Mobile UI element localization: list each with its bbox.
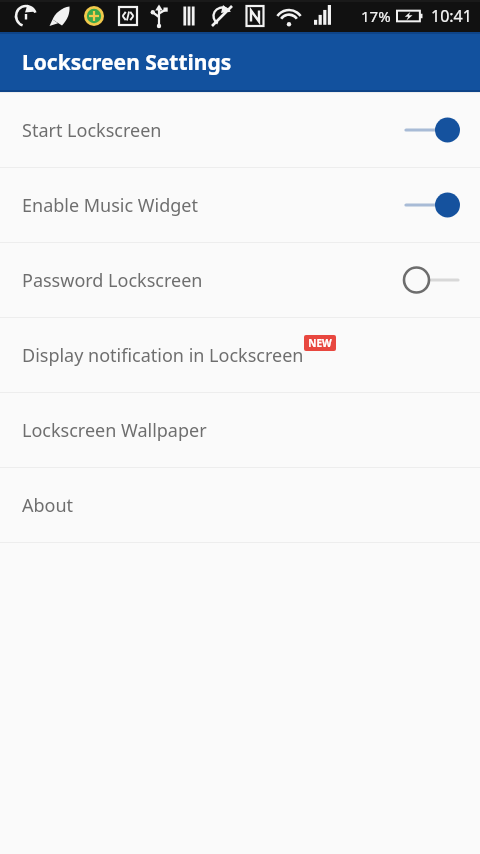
staticText: Lockscreen Settings (22, 48, 232, 77)
staticText: Start Lockscreen (22, 118, 400, 143)
button[interactable]: Lockscreen Wallpaper (0, 393, 480, 467)
button[interactable]: Start Lockscreen (0, 93, 480, 167)
staticText: Enable Music Widget (22, 193, 400, 218)
staticText: NEW (308, 336, 332, 350)
staticText: 10:41 (431, 5, 472, 27)
button[interactable]: Toggle off (400, 263, 462, 297)
button[interactable]: Toggle on (400, 113, 462, 147)
staticText: Lockscreen Wallpaper (22, 418, 462, 443)
button[interactable]: Enable Music Widget (0, 168, 480, 242)
button[interactable]: Password Lockscreen (0, 243, 480, 317)
staticText: About (22, 493, 462, 518)
staticText: Display notification in Lockscreen (22, 343, 304, 368)
staticText: Password Lockscreen (22, 268, 400, 293)
staticText: 17% (361, 6, 391, 26)
button[interactable]: Toggle on (400, 188, 462, 222)
button[interactable]: About (0, 468, 480, 542)
button[interactable]: Display notification in Lockscreen (0, 318, 480, 392)
